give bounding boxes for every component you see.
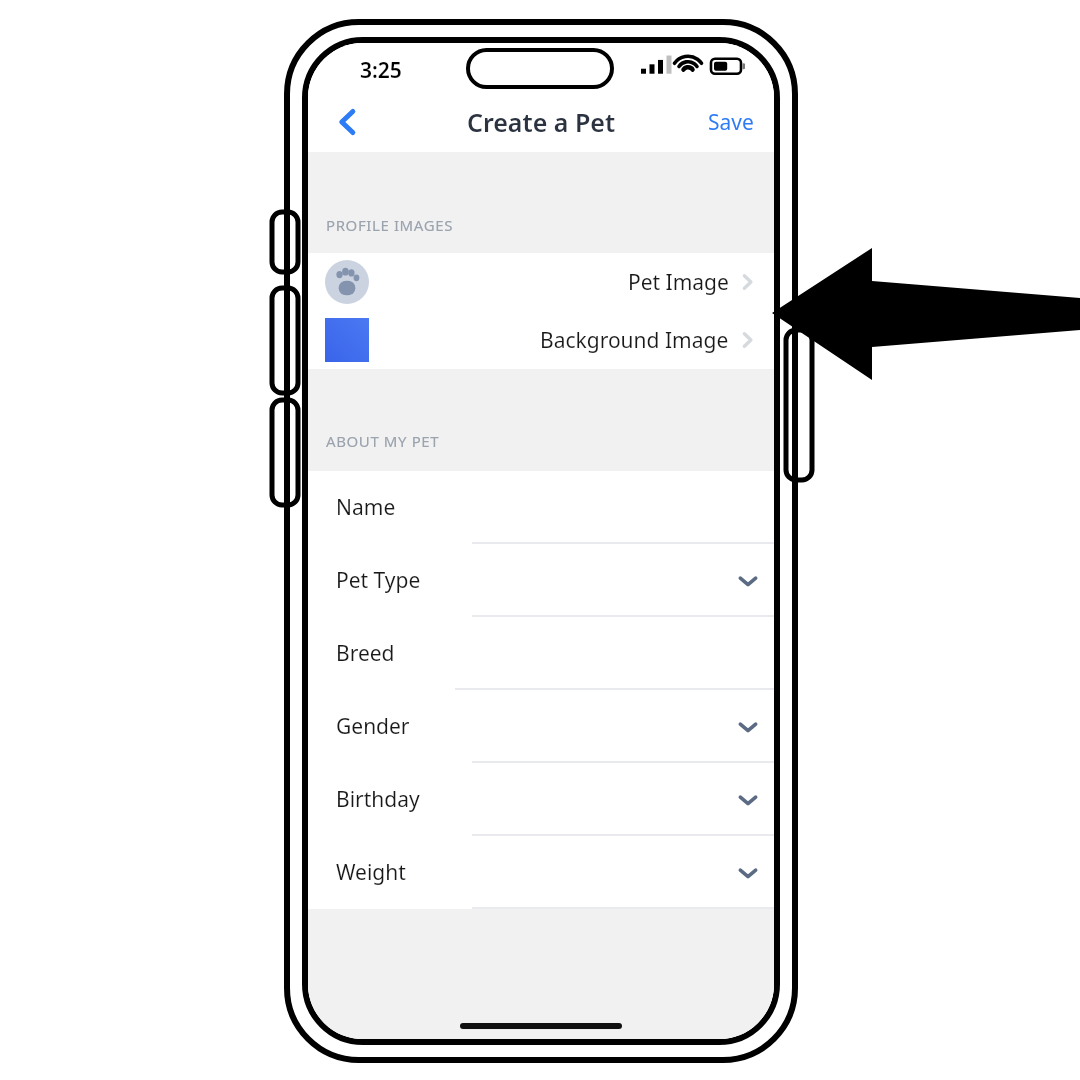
staticText: PROFILE IMAGES [326, 215, 453, 235]
staticText: ABOUT MY PET [326, 431, 440, 451]
staticText: Gender [336, 712, 410, 741]
button[interactable]: Breed [308, 617, 774, 690]
staticText: Weight [336, 858, 406, 887]
staticText: Birthday [336, 785, 420, 814]
button[interactable]: Pet Image [308, 253, 774, 311]
staticText: Pet Image [628, 268, 729, 297]
staticText: Breed [336, 639, 395, 668]
button[interactable]: Name [308, 471, 774, 544]
button[interactable]: Birthday [308, 763, 774, 836]
button[interactable]: Back [324, 98, 372, 146]
staticText: Pet Type [336, 566, 421, 595]
staticText: Save [708, 108, 754, 137]
button[interactable]: Gender [308, 690, 774, 763]
staticText: Create a Pet [308, 105, 774, 139]
button[interactable]: Weight [308, 836, 774, 909]
staticText: 3:25 [360, 56, 402, 85]
staticText: Background Image [540, 326, 729, 355]
staticText: Name [336, 493, 396, 522]
button[interactable]: Save [694, 100, 768, 145]
button[interactable]: Background Image [308, 311, 774, 369]
button[interactable]: Pet Type [308, 544, 774, 617]
